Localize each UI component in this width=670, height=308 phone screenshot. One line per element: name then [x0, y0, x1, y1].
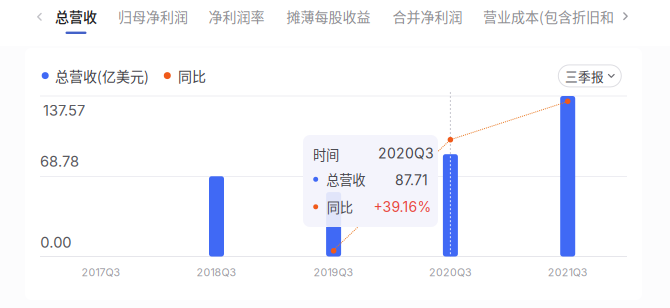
staticText: 同比: [178, 65, 206, 86]
staticText: 合并净利润: [392, 6, 462, 26]
button[interactable]: 摊薄每股收益: [286, 2, 370, 30]
button[interactable]: Previous metrics: [31, 7, 48, 27]
button[interactable]: 三季报: [558, 64, 622, 87]
staticText: 摊薄每股收益: [286, 6, 370, 26]
button[interactable]: 营业成本(包含折旧和: [483, 2, 614, 30]
staticText: 2018Q3: [196, 266, 236, 279]
staticText: 三季报: [565, 67, 604, 85]
staticText: 68.78: [40, 152, 79, 170]
staticText: 同比: [327, 197, 353, 216]
button[interactable]: 归母净利润: [118, 2, 188, 30]
staticText: 时间: [313, 145, 339, 164]
staticText: 营业成本(包含折旧和: [483, 6, 614, 26]
staticText: 总营收: [326, 170, 365, 189]
staticText: 2020Q3: [429, 266, 472, 279]
staticText: 2021Q3: [548, 266, 588, 279]
staticText: 0.00: [40, 233, 71, 251]
button[interactable]: 合并净利润: [392, 2, 462, 30]
staticText: 137.57: [43, 101, 85, 119]
staticText: 归母净利润: [118, 6, 188, 26]
button[interactable]: 总营收: [55, 2, 97, 30]
staticText: +39.16%: [373, 198, 431, 215]
staticText: 净利润率: [208, 6, 264, 26]
staticText: 总营收(亿美元): [55, 65, 149, 86]
staticText: 2019Q3: [314, 266, 354, 279]
staticText: 总营收: [55, 6, 97, 26]
button[interactable]: 净利润率: [208, 2, 264, 30]
staticText: 87.71: [395, 172, 428, 189]
staticText: 2017Q3: [81, 266, 120, 279]
staticText: 2020Q3: [378, 145, 434, 162]
button[interactable]: More metrics: [617, 6, 634, 26]
